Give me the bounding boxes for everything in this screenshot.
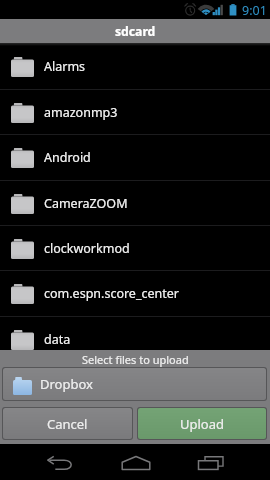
- staticText: com.espn.score_center: [44, 285, 179, 302]
- staticText: Alarms: [44, 58, 86, 75]
- staticText: Upload: [180, 415, 225, 433]
- button[interactable]: Upload: [138, 408, 266, 439]
- staticText: Select files to upload: [82, 352, 189, 367]
- button[interactable]: amazonmp3: [0, 90, 270, 134]
- button[interactable]: Cancel: [3, 408, 132, 439]
- staticText: sdcard: [115, 23, 156, 40]
- staticText: data: [44, 331, 71, 348]
- button[interactable]: data: [0, 317, 270, 361]
- button[interactable]: Home: [104, 444, 168, 480]
- button[interactable]: Android: [0, 135, 270, 179]
- staticText: Android: [44, 149, 91, 166]
- staticText: Dropbox: [40, 375, 93, 393]
- staticText: Cancel: [47, 415, 88, 433]
- button[interactable]: CameraZOOM: [0, 181, 270, 225]
- button[interactable]: Dropbox: [3, 368, 266, 400]
- button[interactable]: Recent apps: [168, 444, 252, 480]
- button[interactable]: Back: [16, 444, 104, 480]
- button[interactable]: Alarms: [0, 44, 270, 88]
- staticText: amazonmp3: [44, 104, 118, 121]
- staticText: 9:01: [242, 2, 267, 19]
- staticText: clockworkmod: [44, 240, 130, 257]
- staticText: CameraZOOM: [44, 195, 128, 212]
- button[interactable]: clockworkmod: [0, 226, 270, 270]
- button[interactable]: com.espn.score_center: [0, 271, 270, 315]
